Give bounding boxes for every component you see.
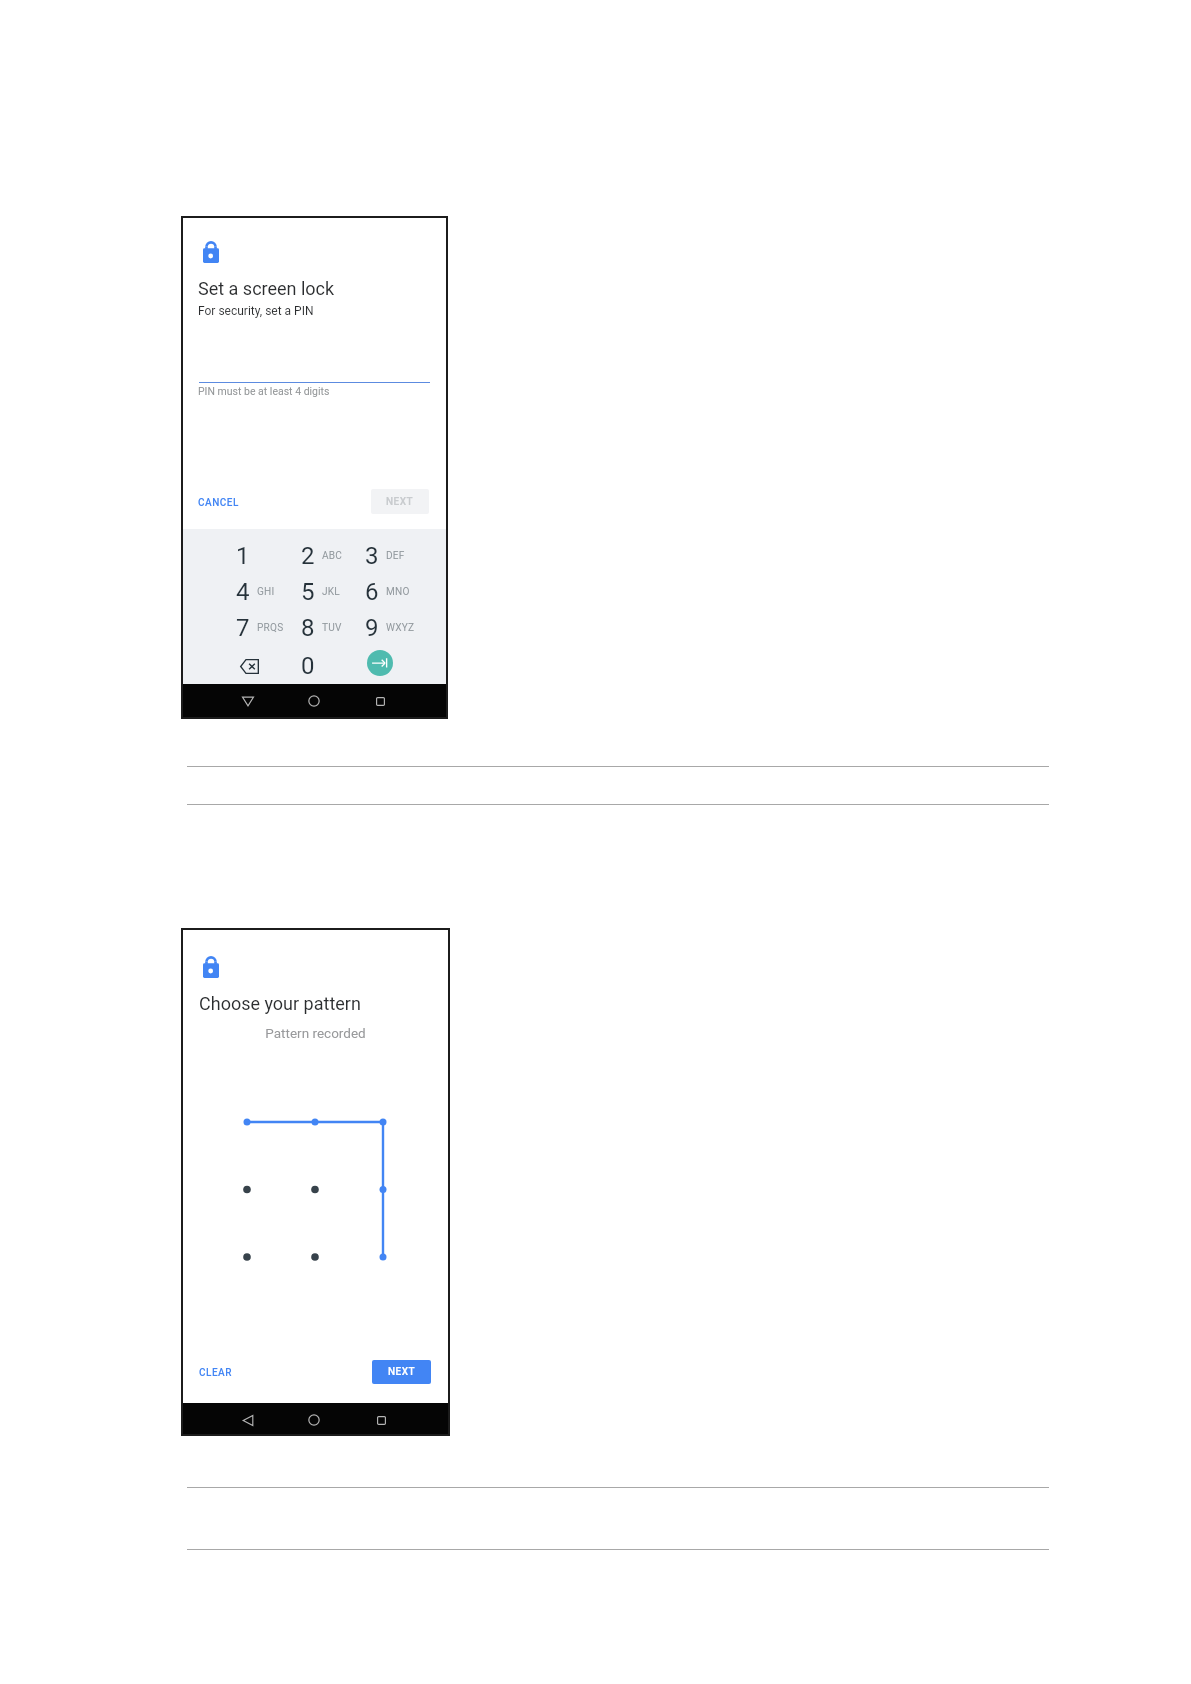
staticText: JKL <box>322 586 340 598</box>
button[interactable] <box>338 538 406 574</box>
staticText: 4 <box>236 578 250 606</box>
staticText: 6 <box>365 578 379 606</box>
staticText: 3 <box>365 542 379 570</box>
button[interactable]: Enter <box>367 650 393 676</box>
button[interactable]: Home <box>298 1408 330 1432</box>
button[interactable] <box>209 574 277 610</box>
staticText: Choose your pattern <box>199 993 361 1014</box>
staticText: Set a screen lock <box>198 278 335 299</box>
button[interactable] <box>338 610 406 646</box>
button[interactable] <box>338 574 406 610</box>
staticText: ABC <box>322 550 343 562</box>
staticText: Pattern recorded <box>181 1025 450 1041</box>
staticText: PRQS <box>257 622 284 634</box>
staticText: 1 <box>236 542 250 570</box>
button[interactable]: NEXT <box>371 489 429 514</box>
staticText: 0 <box>301 652 315 680</box>
button[interactable]: Recents <box>365 1408 397 1432</box>
button[interactable]: Back <box>232 1408 264 1432</box>
staticText: For security, set a PIN <box>198 304 314 318</box>
button[interactable]: Back <box>232 689 264 713</box>
button[interactable] <box>209 538 277 574</box>
staticText: WXYZ <box>386 622 415 634</box>
staticText: CANCEL <box>198 497 239 509</box>
staticText: PIN must be at least 4 digits <box>198 385 330 397</box>
staticText: DEF <box>386 550 405 562</box>
staticText: CLEAR <box>199 1367 232 1379</box>
staticText: TUV <box>322 622 342 634</box>
staticText: 9 <box>365 614 379 642</box>
button[interactable]: Home <box>298 689 330 713</box>
button[interactable] <box>274 648 342 684</box>
button[interactable]: CANCEL <box>192 491 245 515</box>
button[interactable] <box>274 610 342 646</box>
staticText: 2 <box>301 542 315 570</box>
button[interactable] <box>274 538 342 574</box>
staticText: GHI <box>257 586 275 598</box>
staticText: 8 <box>301 614 315 642</box>
staticText: NEXT <box>386 496 414 508</box>
staticText: NEXT <box>388 1366 416 1378</box>
button[interactable]: Recents <box>364 689 396 713</box>
button[interactable]: Backspace <box>215 648 283 684</box>
button[interactable]: CLEAR <box>193 1361 238 1385</box>
staticText: 5 <box>301 578 315 606</box>
button[interactable] <box>274 574 342 610</box>
button[interactable] <box>209 610 277 646</box>
staticText: MNO <box>386 586 410 598</box>
staticText: 7 <box>236 614 250 642</box>
button[interactable]: NEXT <box>372 1360 431 1384</box>
